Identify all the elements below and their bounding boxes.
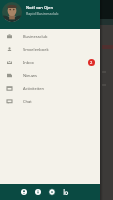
staticText: 2 [90,60,93,65]
button[interactable]: Smoelenboek [0,43,100,56]
button[interactable]: Businessclub [0,30,100,43]
staticText: Smoelenboek [23,47,49,52]
staticText: Inbox [23,60,34,65]
button[interactable]: Logo [59,185,73,199]
button[interactable]: Chat [0,95,100,108]
button[interactable]: Activiteiten [0,82,100,95]
staticText: Nieuws [23,73,37,78]
button[interactable]: Settings [45,185,59,199]
button[interactable]: Nieuws [0,69,100,82]
staticText: Rapid Businessclub [26,11,59,16]
staticText: Businessclub [23,34,48,39]
staticText: Chat [23,99,32,104]
button[interactable]: Info [31,185,45,199]
button[interactable]: Inbox [0,56,100,69]
staticText: Noël van Ojen [26,5,53,10]
staticText: Activiteiten [23,86,44,91]
button[interactable]: Help [17,185,31,199]
